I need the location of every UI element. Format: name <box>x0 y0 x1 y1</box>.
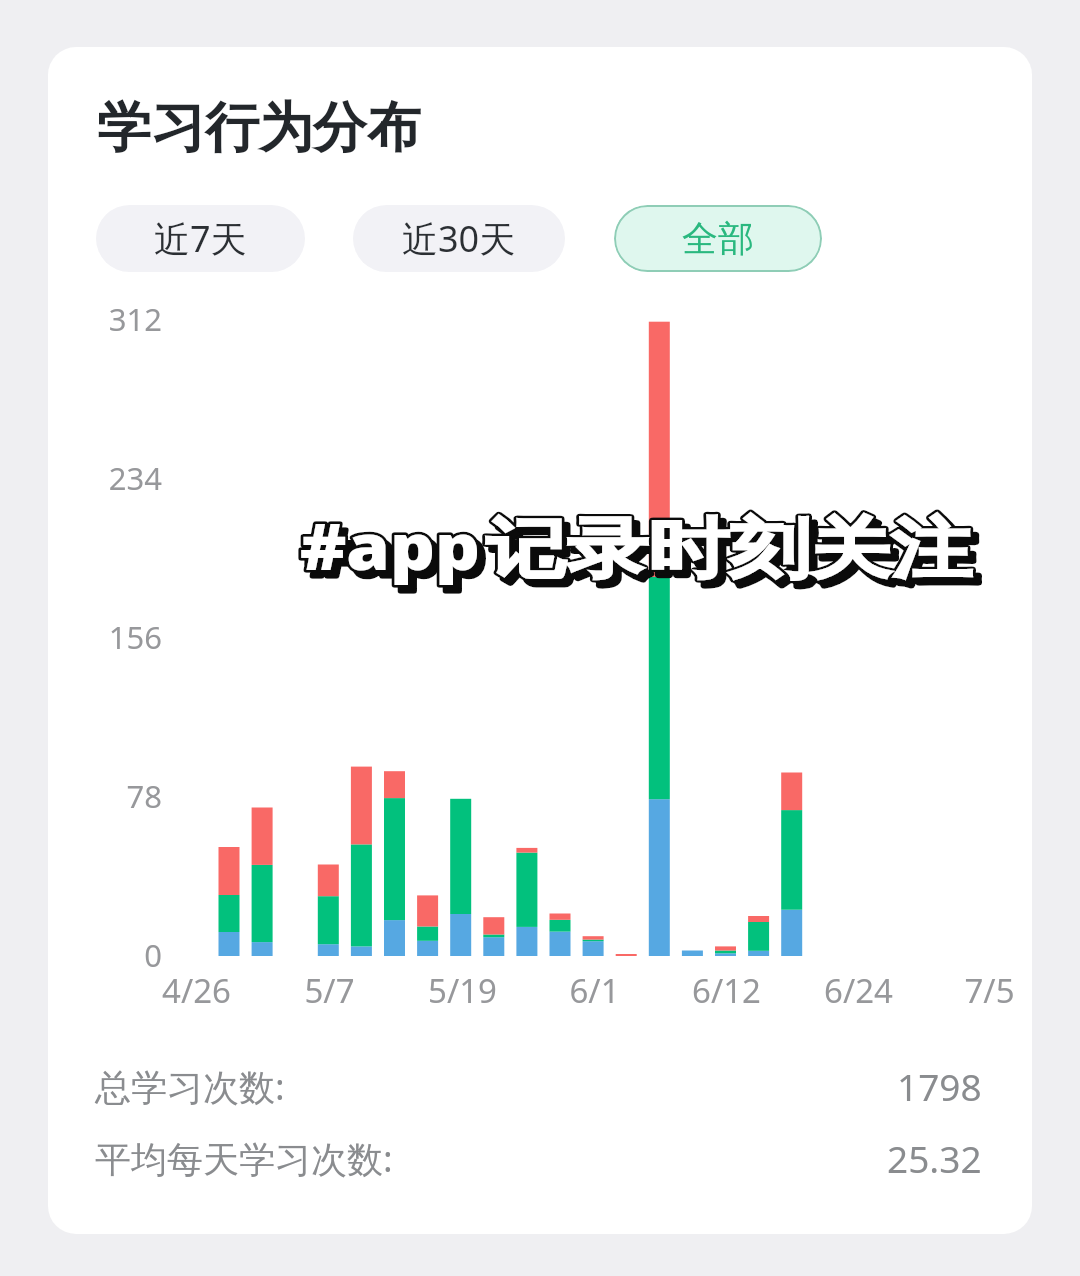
staticText: 5/19 <box>428 968 497 1013</box>
button[interactable]: 总学习次数: <box>48 1052 1032 1120</box>
button[interactable]: 近30天 <box>353 205 565 272</box>
staticText: 234 <box>108 457 162 499</box>
staticText: 记录时刻关注 <box>486 509 972 591</box>
staticText: 6/24 <box>824 968 893 1013</box>
staticText: 记录时刻关注 <box>486 509 972 591</box>
staticText: #app <box>306 507 486 595</box>
staticText: 0 <box>144 934 162 976</box>
staticText: #app <box>300 501 480 588</box>
staticText: 平均每天学习次数: <box>95 1134 393 1183</box>
staticText: 学习行为分布 <box>97 94 421 162</box>
staticText: 记录时刻关注 <box>492 515 978 596</box>
staticText: 78 <box>126 775 162 817</box>
button[interactable]: 近7天 <box>96 205 305 272</box>
staticText: 5/7 <box>304 968 355 1013</box>
staticText: 近7天 <box>154 214 247 263</box>
staticText: 156 <box>108 616 162 658</box>
staticText: 全部 <box>682 216 754 261</box>
staticText: 25.32 <box>887 1133 982 1183</box>
staticText: 记录时刻关注 <box>492 515 978 596</box>
staticText: 7/5 <box>964 968 1015 1013</box>
staticText: 1798 <box>897 1061 982 1111</box>
staticText: 312 <box>108 298 162 340</box>
button[interactable]: 平均每天学习次数: <box>48 1124 1032 1192</box>
button[interactable]: 全部 <box>614 205 822 272</box>
other: App watermark <box>280 480 1000 610</box>
staticText: 总学习次数: <box>95 1062 285 1111</box>
staticText: 6/1 <box>569 968 620 1013</box>
staticText: 近30天 <box>402 214 516 263</box>
staticText: #app <box>306 507 486 595</box>
staticText: 4/26 <box>162 968 231 1013</box>
staticText: #app <box>300 501 480 588</box>
staticText: 6/12 <box>692 968 761 1013</box>
